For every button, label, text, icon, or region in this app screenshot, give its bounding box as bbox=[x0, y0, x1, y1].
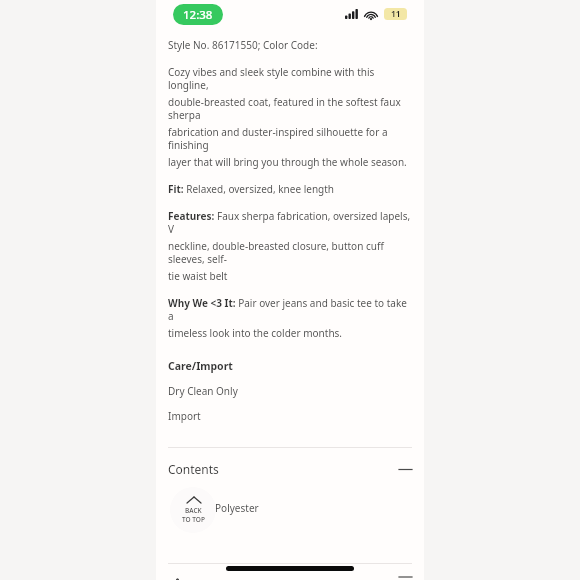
button[interactable]: Size + Fit bbox=[156, 564, 424, 580]
staticText: timeless look into the colder months. bbox=[168, 326, 343, 340]
staticText: TO TOP bbox=[182, 515, 205, 524]
staticText: layer that will bring you through the wh… bbox=[168, 155, 407, 169]
staticText: Dry Clean Only bbox=[168, 384, 238, 398]
staticText: Features: Faux sherpa fabrication, overs… bbox=[168, 209, 412, 236]
staticText: Cozy vibes and sleek style combine with … bbox=[168, 65, 412, 92]
staticText: neckline, double-breasted closure, butto… bbox=[168, 239, 412, 266]
staticText: 11 bbox=[391, 8, 401, 20]
staticText: Care/Import bbox=[168, 359, 233, 373]
button[interactable]: Back to top bbox=[170, 487, 216, 533]
staticText: Why We <3 It: Pair over jeans and basic … bbox=[168, 296, 412, 323]
staticText: double-breasted coat, featured in the so… bbox=[168, 95, 412, 122]
staticText: 12:38 bbox=[183, 7, 213, 23]
staticText: Fit: Relaxed, oversized, knee length bbox=[168, 182, 335, 196]
staticText: BACK bbox=[185, 506, 202, 515]
staticText: fabrication and duster-inspired silhouet… bbox=[168, 125, 412, 152]
staticText: tie waist belt bbox=[168, 269, 228, 283]
staticText: Contents bbox=[168, 461, 219, 477]
staticText: Import bbox=[168, 409, 201, 423]
staticText: 100% Polyester bbox=[187, 501, 259, 515]
button[interactable]: Status time 12:38 bbox=[173, 4, 223, 25]
staticText: Style No. 86171550; Color Code: bbox=[168, 38, 318, 52]
button[interactable]: Contents bbox=[156, 448, 424, 490]
